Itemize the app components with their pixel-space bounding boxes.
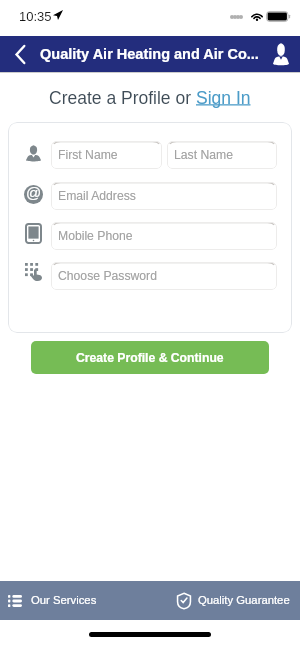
staticText: Mobile Phone [58, 229, 133, 243]
button[interactable]: Mobile Phone [51, 222, 277, 250]
staticText: Choose Password [58, 269, 157, 283]
button[interactable]: Create Profile & Continue [31, 341, 269, 374]
button[interactable]: Email Address [51, 182, 277, 210]
staticText: 10:35 [19, 9, 52, 24]
staticText: Create a Profile or [49, 88, 196, 108]
button[interactable]: Back [0, 36, 36, 72]
button[interactable]: Quality Guarantee [150, 581, 300, 620]
staticText: Quality Air Heating and Air Co... [40, 46, 259, 62]
button[interactable]: First Name [51, 141, 162, 169]
button[interactable]: Account [264, 36, 300, 72]
button[interactable]: Sign In [196, 88, 251, 108]
staticText: Last Name [174, 148, 233, 162]
staticText: First Name [58, 148, 118, 162]
staticText: Our Services [31, 594, 97, 607]
staticText: Create Profile & Continue [76, 351, 224, 365]
button[interactable]: Last Name [167, 141, 277, 169]
staticText: @ [26, 185, 42, 201]
button[interactable]: Our Services [0, 581, 150, 620]
staticText: Quality Guarantee [198, 594, 290, 607]
button[interactable]: Choose Password [51, 262, 277, 290]
staticText: Email Address [58, 189, 136, 203]
